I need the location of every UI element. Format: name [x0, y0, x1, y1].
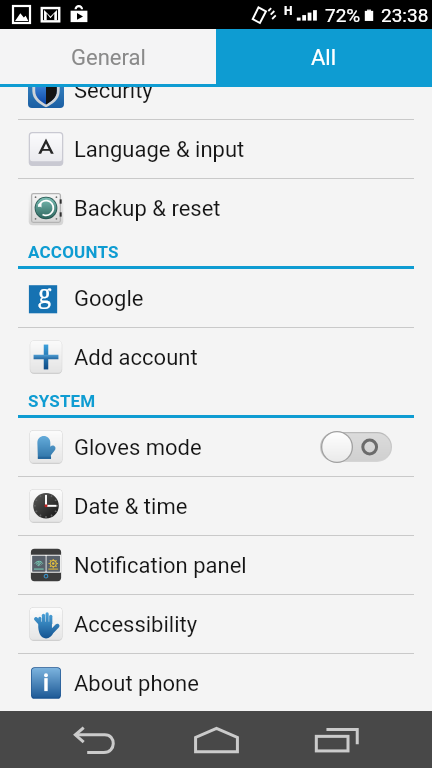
staticText: Backup & reset — [74, 196, 221, 222]
staticText: Security — [74, 78, 153, 104]
staticText: About phone — [74, 671, 199, 697]
button[interactable]: All — [216, 29, 432, 84]
button[interactable]: Backup & reset — [0, 179, 432, 237]
staticText: Gloves mode — [74, 435, 202, 461]
button[interactable]: g — [0, 269, 432, 327]
button[interactable]: About phone — [0, 654, 432, 712]
staticText: General — [71, 45, 146, 71]
staticText: 72% — [325, 4, 361, 26]
staticText: Accessibility — [74, 612, 198, 638]
button[interactable]: Add account — [0, 328, 432, 386]
staticText: SYSTEM — [28, 391, 96, 411]
staticText: 23:38 — [381, 4, 429, 26]
staticText: All — [311, 45, 337, 71]
button[interactable]: Security — [0, 61, 432, 119]
staticText: Google — [74, 286, 144, 312]
button[interactable]: Gloves mode toggle — [320, 431, 392, 463]
button[interactable]: Gloves mode — [0, 418, 432, 476]
button[interactable]: Back — [60, 711, 132, 768]
button[interactable]: Language & input — [0, 120, 432, 178]
button[interactable]: General — [0, 29, 216, 84]
button[interactable]: Accessibility — [0, 595, 432, 653]
staticText: Language & input — [74, 137, 245, 163]
button[interactable]: Recents — [301, 711, 373, 768]
staticText: Notification panel — [74, 553, 247, 579]
staticText: Add account — [74, 345, 198, 371]
button[interactable]: Home — [180, 711, 252, 768]
button[interactable]: Date & time — [0, 477, 432, 535]
button[interactable]: Notification panel — [0, 536, 432, 594]
staticText: Date & time — [74, 494, 188, 520]
staticText: ACCOUNTS — [28, 242, 119, 262]
staticText: g — [38, 276, 52, 310]
staticText: H — [284, 4, 293, 18]
